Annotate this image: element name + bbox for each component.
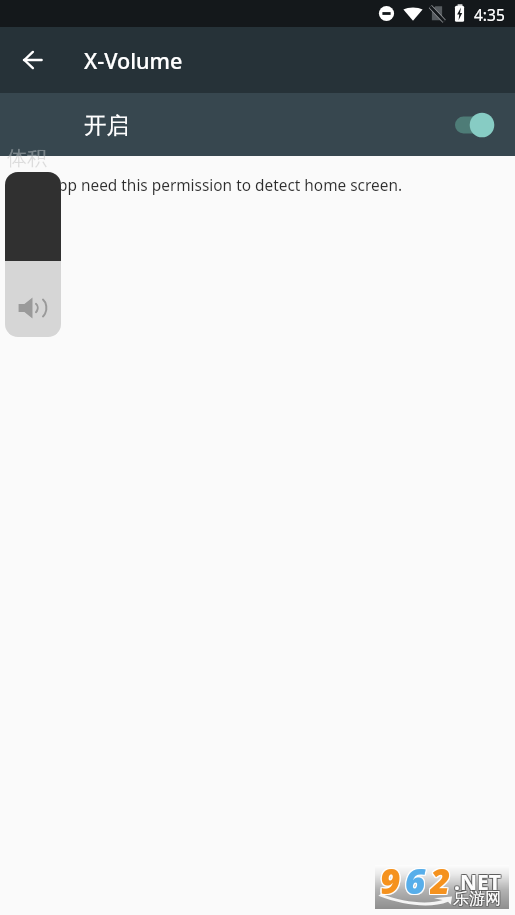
staticText: 2 [431,856,452,900]
button[interactable]: Enable toggle [455,105,503,145]
staticText: .NET [455,869,502,898]
staticText: 9 [381,858,402,902]
staticText: 9 [379,858,400,902]
staticText: .NET [454,868,501,897]
staticText: 9 [381,857,402,901]
staticText: X-Volume [84,46,183,75]
staticText: .NET [453,867,500,896]
staticText: 9 [380,856,401,900]
staticText: 9 [379,857,400,901]
staticText: 2 [430,857,451,901]
staticText: 乐游网 [452,888,500,908]
staticText: 乐游网 [454,890,502,910]
staticText: 6 [404,857,425,901]
staticText: 6 [404,856,425,900]
staticText: 9 [380,858,401,902]
staticText: 2 [431,857,452,901]
staticText: .NET [453,868,500,897]
staticText: 2 [430,858,451,902]
staticText: .NET [453,869,500,898]
staticText: 体积 [7,146,47,156]
staticText: 乐游网 [452,889,500,909]
staticText: 2 [430,856,451,900]
button[interactable]: 开启 [0,93,515,156]
staticText: 6 [406,857,427,901]
staticText: 9 [381,856,402,900]
staticText: 6 [404,858,425,902]
staticText: 2 [429,858,450,902]
staticText: 乐游网 [453,890,501,910]
staticText: .NET [454,869,501,898]
staticText: 6 [405,858,426,902]
staticText: 开启 [84,111,129,139]
staticText: 乐游网 [454,888,502,908]
staticText: .NET [454,867,501,896]
staticText: 乐游网 [454,889,502,909]
staticText: 乐游网 [453,889,501,909]
staticText: 2 [429,856,450,900]
staticText: 6 [405,856,426,900]
staticText: 6 [406,856,427,900]
staticText: 4:35 [474,4,505,25]
button[interactable]: Volume slider [5,172,61,337]
button[interactable]: Back [12,40,52,80]
staticText: This app need this permission to detect … [16,175,403,196]
staticText: 乐游网 [452,890,500,910]
staticText: 6 [406,858,427,902]
staticText: 乐游网 [453,888,501,908]
staticText: 2 [429,857,450,901]
staticText: .NET [455,868,502,897]
staticText: 2 [431,858,452,902]
staticText: .NET [455,867,502,896]
staticText: 6 [405,857,426,901]
staticText: 9 [379,856,400,900]
staticText: 9 [380,857,401,901]
staticText: 体积 [7,156,47,171]
